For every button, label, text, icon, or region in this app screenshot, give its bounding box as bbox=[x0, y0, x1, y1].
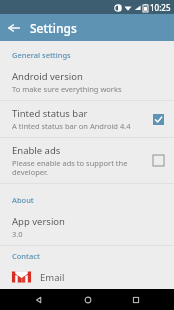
staticText: A tinted status bar on Android 4.4 bbox=[12, 121, 131, 131]
staticText: Settings bbox=[30, 20, 77, 36]
button[interactable]: Home bbox=[77, 289, 98, 310]
button[interactable]: Tinted status bar bbox=[0, 101, 174, 137]
staticText: About bbox=[12, 195, 34, 205]
staticText: Tinted status bar bbox=[12, 107, 88, 120]
button[interactable]: Android version bbox=[0, 64, 174, 100]
staticText: Contact bbox=[12, 251, 40, 261]
button[interactable]: Checked bbox=[153, 114, 164, 125]
staticText: Enable ads bbox=[12, 144, 61, 157]
staticText: Android version bbox=[12, 70, 83, 83]
staticText: App version bbox=[12, 215, 65, 228]
button[interactable]: Recents bbox=[125, 289, 146, 310]
staticText: Please enable ads to support the develop… bbox=[12, 158, 128, 177]
button[interactable]: Back bbox=[0, 14, 27, 41]
button[interactable]: Unchecked bbox=[153, 155, 164, 166]
staticText: 10:25 bbox=[150, 2, 171, 13]
staticText: Email bbox=[40, 271, 65, 284]
button[interactable]: App version bbox=[0, 209, 174, 245]
button[interactable]: Enable ads bbox=[0, 138, 174, 183]
staticText: 3.0 bbox=[12, 229, 23, 239]
button[interactable]: Email bbox=[0, 265, 174, 289]
staticText: To make sure everything works bbox=[12, 84, 122, 94]
staticText: General settings bbox=[12, 50, 71, 60]
button[interactable]: Back bbox=[28, 289, 49, 310]
